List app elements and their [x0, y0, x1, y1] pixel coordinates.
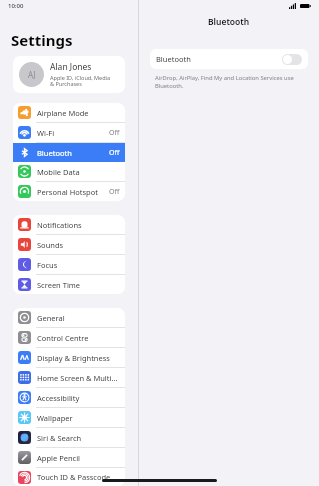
staticText: Apple ID, iCloud, Media & Purchases [50, 74, 111, 88]
staticText: Off [109, 187, 120, 197]
button[interactable]: Sounds [13, 235, 125, 254]
staticText: Display & Brightness [37, 353, 120, 363]
staticText: Mobile Data [37, 167, 120, 177]
staticText: Apple Pencil [37, 453, 120, 463]
button[interactable]: Wallpaper [13, 408, 125, 427]
button[interactable]: Control Centre [13, 328, 125, 347]
staticText: Alan Jones [50, 61, 92, 73]
staticText: Personal Hotspot [37, 187, 109, 197]
button[interactable]: AJ [13, 56, 125, 93]
staticText: Siri & Search [37, 433, 120, 443]
button[interactable]: Apple Pencil [13, 448, 125, 467]
staticText: Settings [11, 30, 73, 50]
button[interactable]: Siri & Search [13, 428, 125, 447]
staticText: Bluetooth [208, 16, 250, 28]
button[interactable]: Home Screen & Multitas… [13, 368, 125, 387]
button[interactable]: Display & Brightness [13, 348, 125, 367]
button[interactable]: Bluetooth [150, 49, 308, 69]
staticText: Bluetooth [37, 148, 109, 158]
button[interactable]: Touch ID & Passcode [13, 468, 125, 486]
staticText: Off [109, 148, 120, 158]
staticText: Touch ID & Passcode [37, 472, 120, 482]
staticText: Screen Time [37, 280, 120, 290]
staticText: Airplane Mode [37, 108, 120, 118]
staticText: Wallpaper [37, 413, 120, 423]
staticText: AirDrop, AirPlay, Find My and Location S… [155, 74, 294, 90]
staticText: 10:00 [8, 2, 24, 10]
staticText: Home Screen & Multitas… [37, 373, 120, 383]
staticText: Control Centre [37, 333, 120, 343]
button[interactable]: Airplane Mode [13, 103, 125, 122]
staticText: Notifications [37, 220, 120, 230]
button[interactable]: Bluetooth [13, 143, 125, 162]
button[interactable]: Wi-Fi [13, 123, 125, 142]
button[interactable]: Focus [13, 255, 125, 274]
staticText: Wi-Fi [37, 128, 109, 138]
button[interactable]: Toggle [282, 54, 302, 65]
staticText: Focus [37, 260, 120, 270]
button[interactable]: Mobile Data [13, 162, 125, 181]
button[interactable]: Personal Hotspot [13, 182, 125, 201]
staticText: Accessibility [37, 393, 120, 403]
button[interactable]: Accessibility [13, 388, 125, 407]
staticText: AJ [28, 69, 36, 80]
staticText: Sounds [37, 240, 120, 250]
staticText: Bluetooth [156, 54, 282, 64]
button[interactable]: Screen Time [13, 275, 125, 294]
staticText: General [37, 313, 120, 323]
button[interactable]: Notifications [13, 215, 125, 234]
staticText: Off [109, 128, 120, 138]
button[interactable]: General [13, 308, 125, 327]
